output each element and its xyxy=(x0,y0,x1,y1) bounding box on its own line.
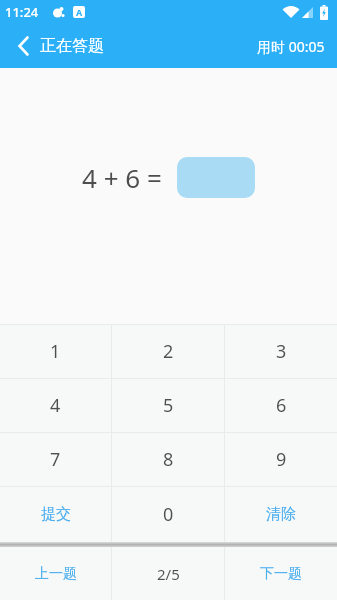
staticText: 9 xyxy=(276,447,287,472)
button[interactable]: 6 xyxy=(225,379,337,432)
staticText: 清除 xyxy=(266,505,296,524)
staticText: 1 xyxy=(50,339,61,364)
button[interactable]: 7 xyxy=(0,433,111,486)
staticText: 用时 00:05 xyxy=(257,37,325,56)
staticText: 正在答题 xyxy=(40,36,104,56)
button[interactable]: 8 xyxy=(112,433,224,486)
button[interactable]: 9 xyxy=(225,433,337,486)
button[interactable]: 5 xyxy=(112,379,224,432)
staticText: 5 xyxy=(163,393,174,418)
button[interactable]: 1 xyxy=(0,325,111,378)
button[interactable]: 3 xyxy=(225,325,337,378)
staticText: 上一题 xyxy=(35,565,77,583)
staticText: 7 xyxy=(50,447,61,472)
staticText: 0 xyxy=(163,502,174,527)
button[interactable]: 提交 xyxy=(0,487,111,542)
button[interactable]: 清除 xyxy=(225,487,337,542)
staticText: 3 xyxy=(276,339,287,364)
staticText: 2/5 xyxy=(157,564,180,584)
staticText: 11:24 xyxy=(5,3,39,21)
button[interactable] xyxy=(177,157,255,198)
staticText: 4 + 6 = xyxy=(82,160,162,195)
staticText: 4 xyxy=(50,393,61,418)
staticText: 2 xyxy=(163,339,174,364)
button[interactable]: 下一题 xyxy=(225,547,337,600)
staticText: 6 xyxy=(276,393,287,418)
staticText: 提交 xyxy=(41,505,71,524)
button[interactable]: 2 xyxy=(112,325,224,378)
staticText: 下一题 xyxy=(260,565,302,583)
button[interactable]: 4 xyxy=(0,379,111,432)
button[interactable]: 2/5 xyxy=(112,547,224,600)
button[interactable] xyxy=(0,24,40,68)
button[interactable]: 上一题 xyxy=(0,547,111,600)
staticText: A xyxy=(76,6,83,18)
button[interactable]: 0 xyxy=(112,487,224,542)
staticText: 8 xyxy=(163,447,174,472)
